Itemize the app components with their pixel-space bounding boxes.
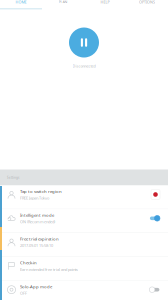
staticText: Earn extended free trial and points [20, 267, 78, 272]
button[interactable]: Free trial expiration [0, 233, 168, 257]
staticText: HELP [100, 0, 109, 4]
staticText: PLAN [58, 0, 67, 4]
staticText: Settings [7, 176, 19, 179]
button[interactable]: HELP [84, 0, 126, 9]
button[interactable]: HOME [0, 0, 42, 9]
staticText: HOME [15, 0, 26, 4]
staticText: OPTIONS [139, 0, 155, 4]
staticText: Tap to switch region [20, 188, 62, 194]
button[interactable]: Tap to switch region [0, 185, 168, 209]
button[interactable]: Intelligent mode [0, 209, 168, 233]
button[interactable]: Check-in [0, 257, 168, 281]
staticText: 2017-09-01 15:58:10 [20, 243, 53, 248]
button[interactable]: OPTIONS [126, 0, 168, 9]
staticText: Intelligent mode [20, 212, 54, 218]
button[interactable]: Solo-App mode [0, 281, 168, 300]
staticText: OFF [20, 291, 27, 296]
staticText: Free trial expiration [20, 236, 59, 242]
button[interactable]: PLAN [42, 0, 84, 9]
staticText: FREE Japan-Tokyo [20, 195, 49, 200]
staticText: Solo-App mode [20, 284, 52, 289]
staticText: ON (Recommended) [20, 219, 55, 224]
staticText: Check-in [20, 260, 37, 265]
staticText: Disconnected [72, 63, 95, 68]
